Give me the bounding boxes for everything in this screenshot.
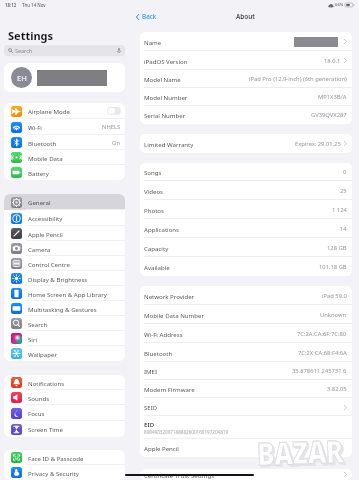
staticText: iPadOS Version bbox=[144, 57, 324, 65]
button[interactable]: Notifications bbox=[4, 375, 125, 390]
staticText: Accessibility bbox=[28, 214, 121, 222]
button[interactable]: Sounds bbox=[4, 390, 125, 405]
staticText: Settings bbox=[8, 28, 54, 43]
staticText: IMEI bbox=[144, 367, 292, 375]
button[interactable]: Serial Number bbox=[140, 106, 352, 124]
staticText: BAZAR bbox=[257, 430, 345, 475]
button[interactable]: iPadOS Version bbox=[140, 51, 352, 70]
staticText: Modem Firmware bbox=[144, 385, 327, 393]
staticText: Camera bbox=[28, 245, 121, 253]
staticText: Apple Pencil bbox=[144, 444, 347, 452]
button[interactable]: Applications bbox=[140, 219, 352, 238]
button[interactable]: Capacity bbox=[140, 238, 352, 257]
staticText: Focus bbox=[28, 409, 121, 417]
staticText: iPad Pro (12.9-inch) (6th generation) bbox=[249, 75, 347, 83]
button[interactable]: Apple Pencil bbox=[140, 439, 352, 457]
button[interactable]: Siri bbox=[4, 331, 125, 346]
button[interactable]: Airplane Mode bbox=[4, 103, 125, 119]
staticText: Apple Pencil bbox=[28, 230, 121, 238]
button[interactable]: Songs bbox=[140, 163, 352, 181]
staticText: Serial Number bbox=[144, 111, 311, 119]
staticText: 3.82.05 bbox=[327, 385, 347, 393]
staticText: GV39QVX287 bbox=[311, 111, 347, 119]
button[interactable]: Certificate Trust Settings bbox=[140, 469, 352, 480]
button[interactable]: Apple Pencil bbox=[4, 226, 125, 241]
button[interactable]: Bluetooth bbox=[140, 343, 352, 362]
staticText: Network Provider bbox=[144, 292, 322, 300]
staticText: Privacy & Security bbox=[28, 469, 121, 477]
staticText: On bbox=[112, 139, 121, 147]
button[interactable]: Focus bbox=[4, 405, 125, 421]
staticText: 128 GB bbox=[327, 244, 347, 252]
staticText: Search bbox=[28, 320, 121, 328]
staticText: Capacity bbox=[144, 244, 327, 252]
staticText: Applications bbox=[144, 225, 340, 233]
staticText: Multitasking & Gestures bbox=[28, 305, 121, 313]
staticText: 7C:2A:CA:6F:7C:80 bbox=[297, 330, 347, 338]
staticText: Search bbox=[15, 47, 117, 54]
button[interactable]: Mobile Data bbox=[4, 150, 125, 165]
staticText: Available bbox=[144, 263, 319, 271]
staticText: NHELS bbox=[102, 123, 121, 131]
staticText: Wallpaper bbox=[28, 350, 121, 358]
button[interactable]: Modem Firmware bbox=[140, 380, 352, 398]
button[interactable]: Battery bbox=[4, 165, 125, 180]
staticText: EH bbox=[17, 73, 27, 83]
staticText: MP1X3B/A bbox=[318, 93, 347, 101]
button[interactable]: Control Centre bbox=[4, 256, 125, 271]
button[interactable]: EH bbox=[4, 63, 125, 92]
staticText: BAZAR bbox=[256, 429, 344, 474]
staticText: 1 124 bbox=[332, 206, 347, 214]
button[interactable]: Home Screen & App Library bbox=[4, 286, 125, 301]
staticText: BAZAR bbox=[256, 429, 344, 474]
button[interactable]: Limited Warranty bbox=[140, 134, 352, 153]
button[interactable]: Accessibility bbox=[4, 210, 125, 226]
staticText: Name bbox=[144, 38, 294, 46]
staticText: Thu 14 Nov bbox=[22, 2, 46, 8]
button[interactable]: IMEI bbox=[140, 362, 352, 380]
staticText: Videos bbox=[144, 187, 340, 195]
button[interactable]: Camera bbox=[4, 241, 125, 256]
button[interactable]: Voice search bbox=[117, 48, 121, 53]
button[interactable]: Screen Time bbox=[4, 421, 125, 437]
button[interactable]: Display & Brightness bbox=[4, 271, 125, 286]
button[interactable]: Bluetooth bbox=[4, 135, 125, 150]
staticText: Home Screen & App Library bbox=[28, 290, 121, 298]
staticText: 18.0.1 bbox=[324, 57, 341, 65]
button[interactable]: Name bbox=[140, 32, 352, 51]
button[interactable]: EID bbox=[140, 416, 352, 439]
staticText: Back bbox=[142, 12, 157, 21]
button[interactable]: Wi-Fi bbox=[4, 119, 125, 135]
button[interactable]: Privacy & Security bbox=[4, 465, 125, 480]
staticText: Limited Warranty bbox=[144, 140, 295, 148]
button[interactable]: Back bbox=[134, 11, 159, 22]
button[interactable]: Search bbox=[4, 316, 125, 331]
button[interactable]: Model Name bbox=[140, 70, 352, 88]
button[interactable]: Photos bbox=[140, 200, 352, 219]
staticText: Songs bbox=[144, 168, 343, 176]
button[interactable]: Wi-Fi Address bbox=[140, 324, 352, 343]
staticText: Unknown bbox=[320, 311, 347, 319]
button[interactable]: General bbox=[4, 194, 125, 210]
staticText: Notifications bbox=[28, 379, 121, 387]
staticText: Wi-Fi Address bbox=[144, 330, 297, 338]
button[interactable]: Multitasking & Gestures bbox=[4, 301, 125, 316]
staticText: 101,18 GB bbox=[319, 263, 347, 271]
button[interactable]: Mobile Data Number bbox=[140, 305, 352, 324]
button[interactable]: Wallpaper bbox=[4, 346, 125, 361]
button[interactable]: Network Provider bbox=[140, 286, 352, 305]
staticText: 35.878611 245731 6 bbox=[292, 367, 347, 375]
button[interactable]: Videos bbox=[140, 181, 352, 200]
button[interactable]: Model Number bbox=[140, 88, 352, 106]
staticText: Control Centre bbox=[28, 260, 121, 268]
button[interactable]: Face ID & Passcode bbox=[4, 450, 125, 465]
staticText: 66% bbox=[335, 2, 344, 8]
button[interactable]: SEID bbox=[140, 398, 352, 416]
staticText: Battery bbox=[28, 169, 121, 177]
staticText: Face ID & Passcode bbox=[28, 454, 121, 462]
staticText: BAZAR bbox=[258, 431, 346, 476]
button[interactable]: Available bbox=[140, 257, 352, 276]
staticText: Wi-Fi bbox=[28, 123, 102, 131]
staticText: 0 bbox=[343, 168, 347, 176]
button[interactable]: Search bbox=[4, 45, 125, 56]
